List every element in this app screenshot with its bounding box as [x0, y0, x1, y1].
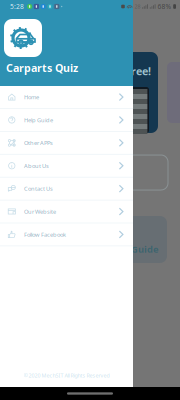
staticText: Help Guide — [24, 116, 53, 124]
button[interactable]: Contact Us — [0, 178, 133, 200]
button[interactable]: Other APPs — [0, 132, 133, 155]
staticText: Follow Facebook — [24, 230, 66, 238]
button[interactable]: Help Guide — [0, 109, 133, 132]
staticText: Other APPs — [24, 139, 53, 147]
button[interactable]: Our Website — [0, 200, 133, 223]
staticText: 5:28 — [10, 2, 24, 11]
staticText: 68% — [157, 2, 171, 11]
staticText: ree! — [131, 64, 151, 78]
staticText: About Us — [24, 162, 49, 170]
button[interactable]: About Us — [0, 155, 133, 178]
staticText: Our Website — [24, 208, 56, 215]
button[interactable]: Follow Facebook — [0, 223, 133, 246]
staticText: Guide — [131, 243, 159, 255]
staticText: 28 — [134, 3, 140, 10]
button[interactable]: Home — [0, 86, 133, 109]
staticText: Carparts Quiz — [6, 61, 78, 75]
staticText: © 2020 MechSIT All Rights Reserved — [23, 372, 109, 379]
staticText: Home — [24, 93, 39, 101]
staticText: Contact Us — [24, 185, 53, 192]
